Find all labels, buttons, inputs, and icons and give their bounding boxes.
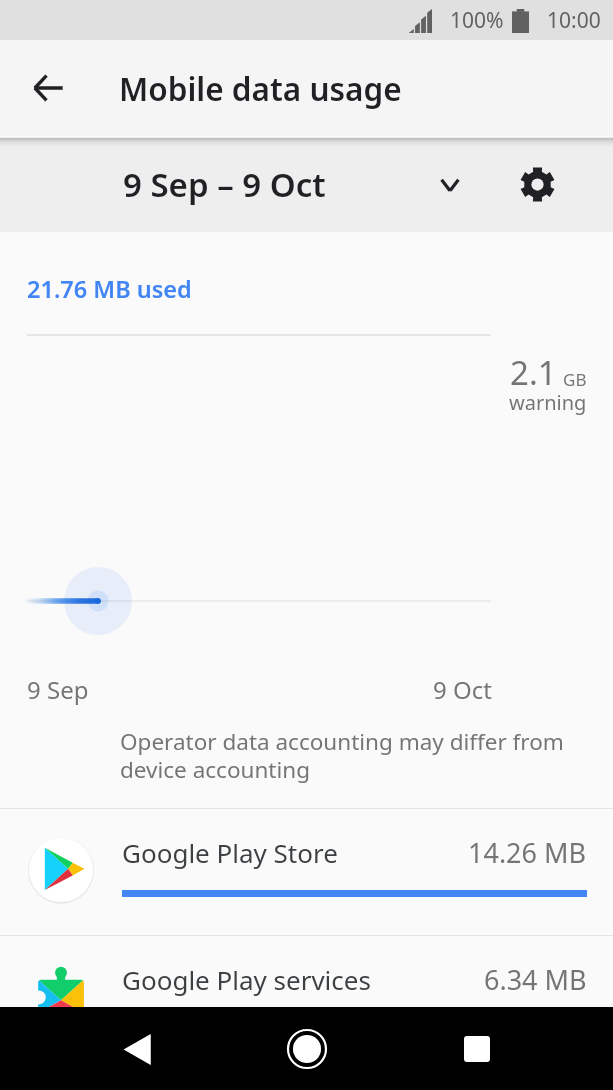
- button[interactable]: Recent apps: [437, 1009, 517, 1089]
- staticText: 6.34 MB: [484, 961, 587, 998]
- staticText: Google Play services: [122, 962, 371, 997]
- staticText: 2.1: [510, 350, 557, 395]
- staticText: Google Play Store: [122, 835, 338, 870]
- button[interactable]: Google Play services: [0, 936, 613, 1007]
- staticText: 100%: [450, 6, 504, 35]
- staticText: 10:00: [547, 6, 601, 35]
- button[interactable]: Settings: [509, 156, 565, 212]
- staticText: GB: [563, 368, 587, 391]
- staticText: 9 Sep: [27, 673, 89, 706]
- button[interactable]: Navigate up: [20, 60, 76, 116]
- button[interactable]: Home: [267, 1009, 347, 1089]
- button[interactable]: Back: [97, 1009, 177, 1089]
- staticText: Mobile data usage: [119, 67, 402, 110]
- staticText: 9 Sep – 9 Oct: [123, 162, 326, 207]
- staticText: Operator data accounting may differ from…: [120, 726, 586, 785]
- staticText: 14.26 MB: [468, 834, 587, 871]
- staticText: 21.76 MB used: [27, 273, 192, 305]
- button[interactable]: Google Play Store: [0, 809, 613, 935]
- staticText: 9 Oct: [433, 673, 492, 706]
- staticText: warning: [509, 389, 587, 416]
- button[interactable]: 9 Sep – 9 Oct: [123, 136, 613, 232]
